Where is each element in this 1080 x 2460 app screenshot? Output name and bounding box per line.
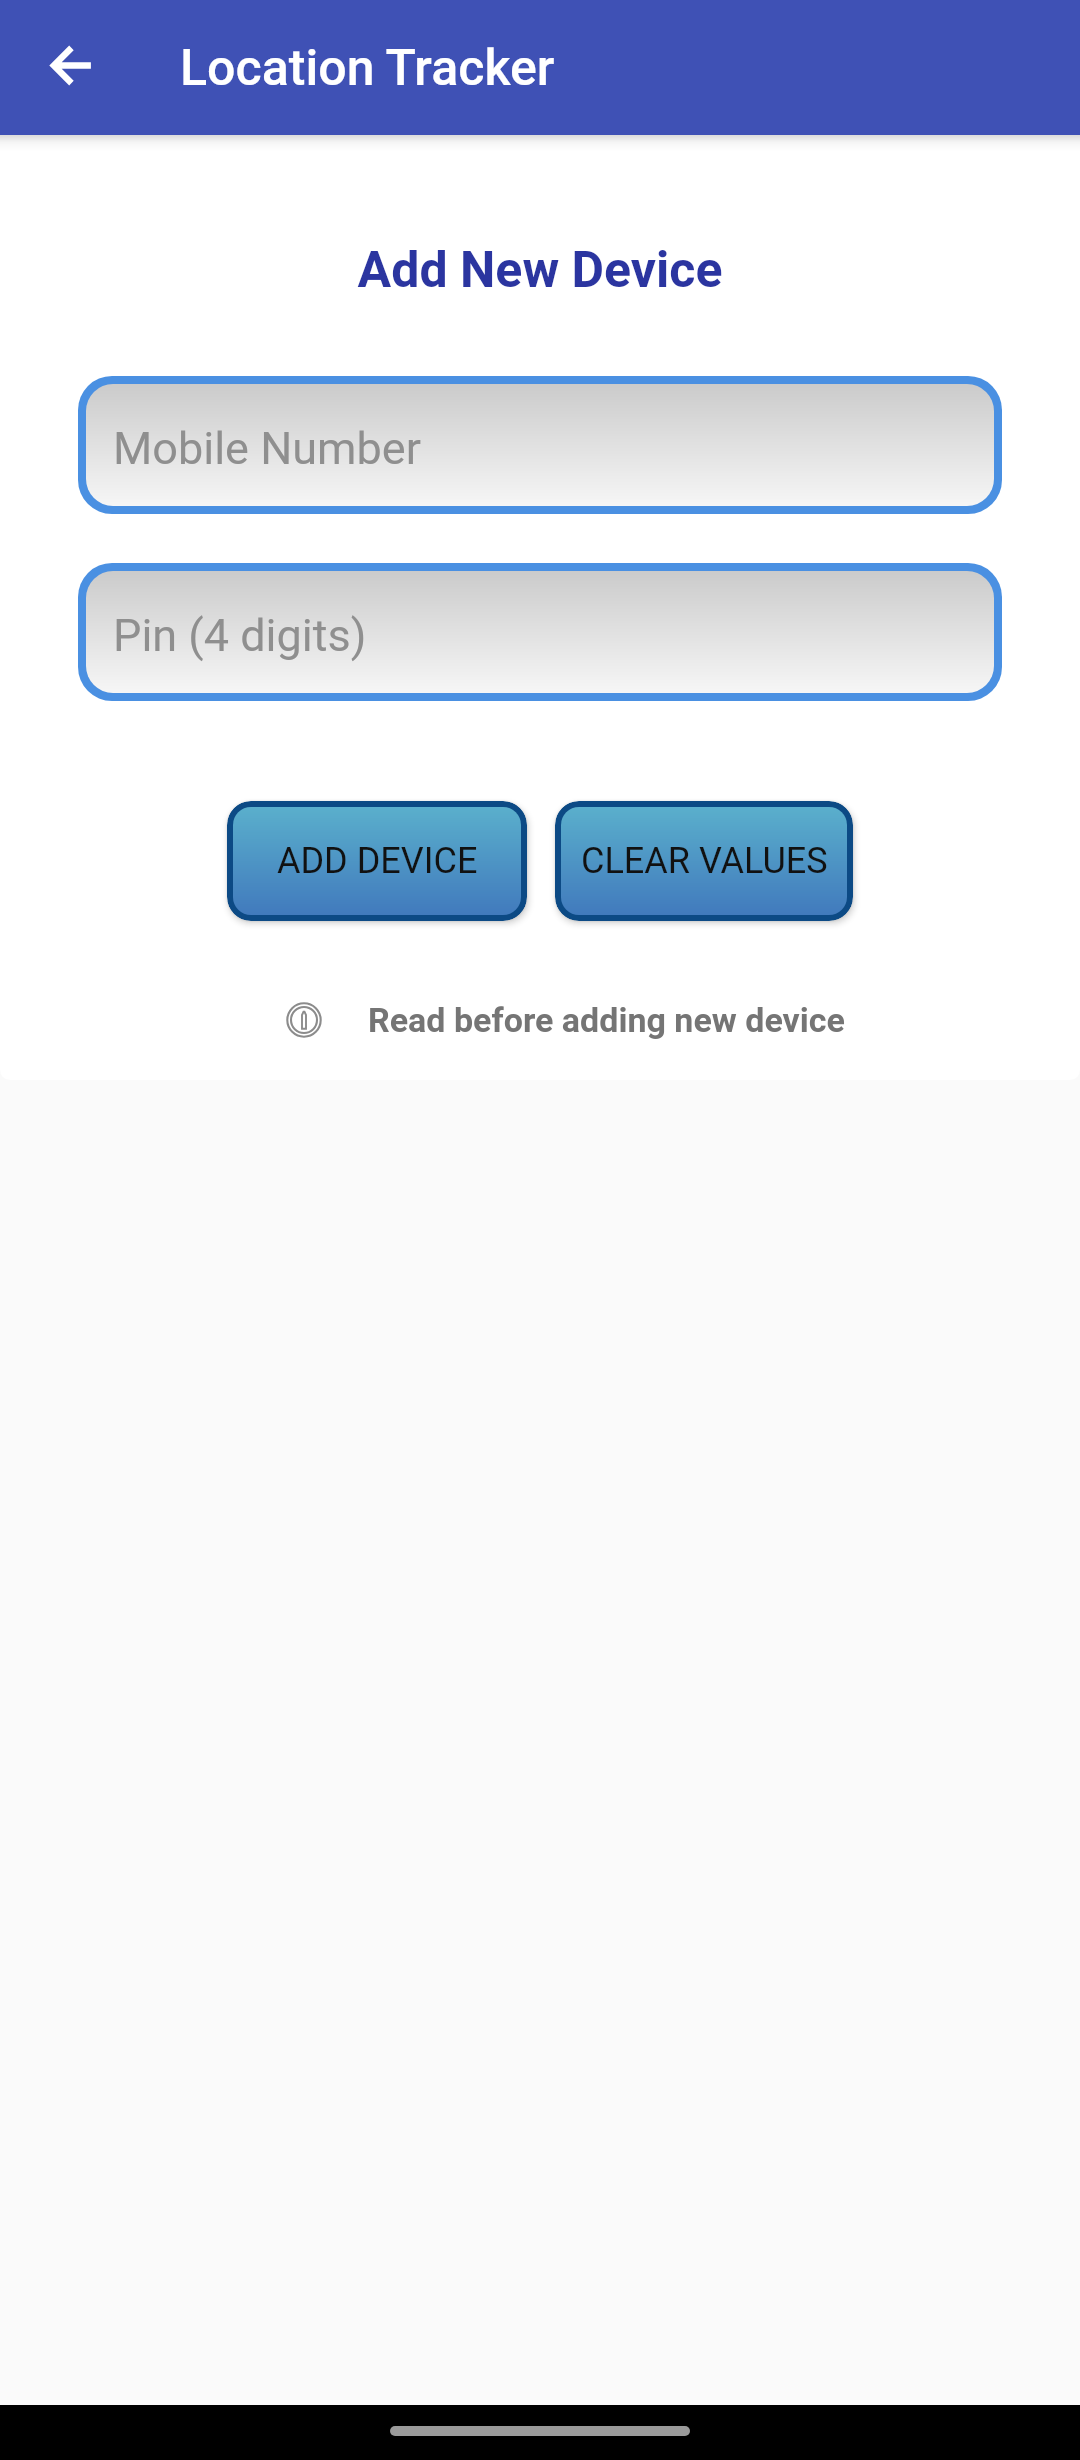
button[interactable]: Pin (4 digits) bbox=[86, 571, 994, 693]
button[interactable]: Mobile Number bbox=[86, 384, 994, 506]
button[interactable]: ADD DEVICE bbox=[233, 807, 521, 915]
staticText: Pin (4 digits) bbox=[113, 609, 367, 662]
staticText: ADD DEVICE bbox=[277, 840, 478, 882]
staticText: Read before adding new device bbox=[368, 1000, 845, 1040]
staticText: Mobile Number bbox=[113, 422, 421, 475]
button[interactable]: Back bbox=[16, 19, 114, 117]
button[interactable]: CLEAR VALUES bbox=[561, 807, 847, 915]
staticText: CLEAR VALUES bbox=[581, 840, 828, 882]
staticText: Location Tracker bbox=[180, 39, 555, 98]
button[interactable]: Read before adding new device bbox=[0, 975, 1080, 1065]
staticText: Add New Device bbox=[0, 241, 1080, 300]
